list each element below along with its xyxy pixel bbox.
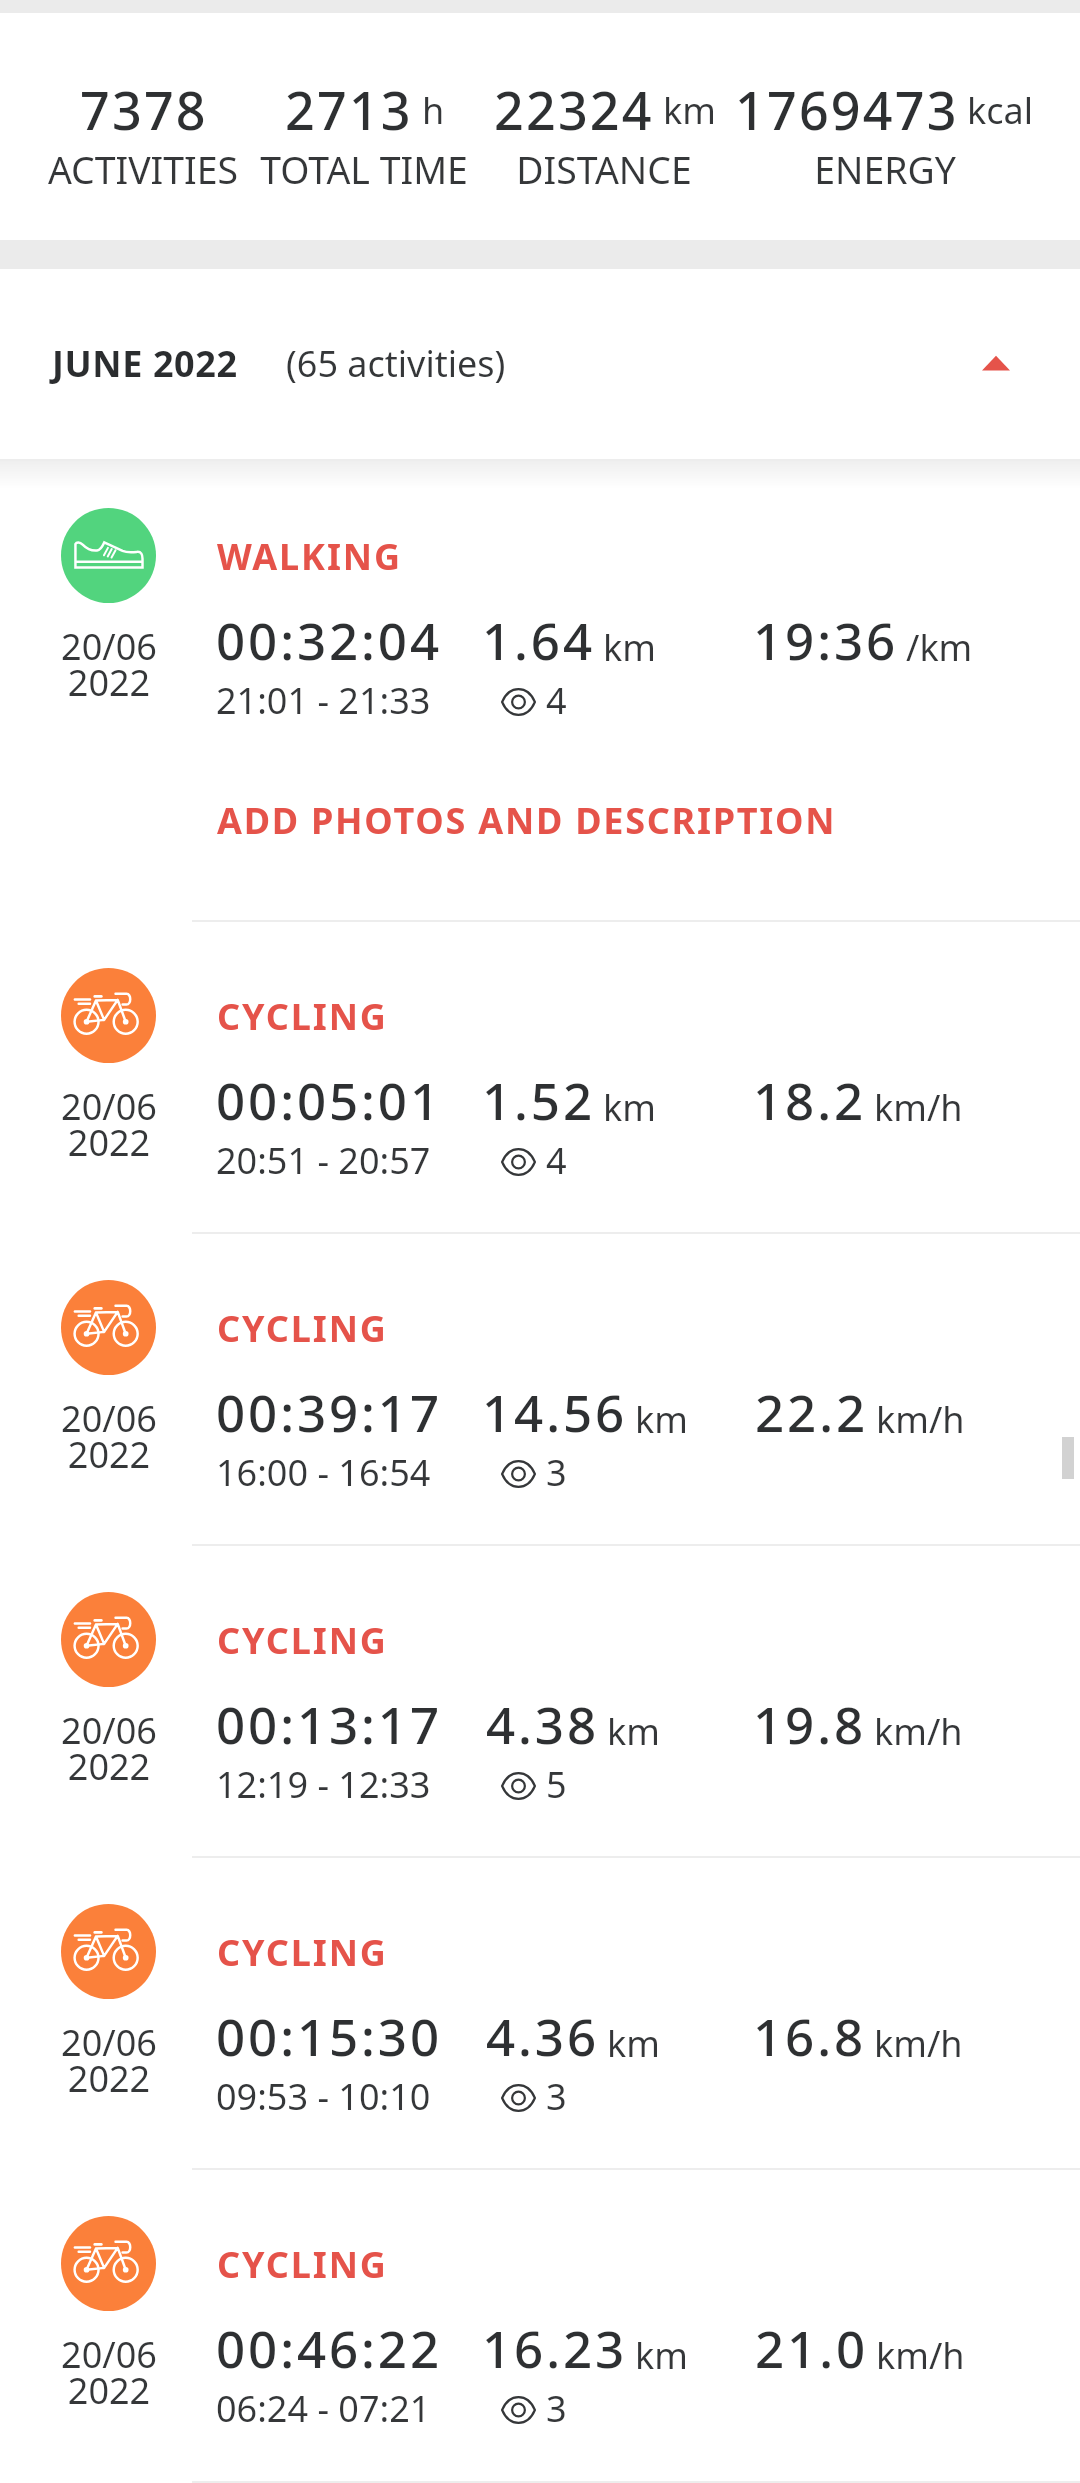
staticText: km [635, 1395, 688, 1444]
staticText: WALKING [217, 532, 402, 581]
staticText: km/h [874, 2019, 963, 2068]
staticText: 2022 [0, 2054, 309, 2103]
staticText: TOTAL TIME [164, 144, 564, 195]
staticText: 2022 [0, 1118, 309, 1167]
staticText: CYCLING [217, 1304, 388, 1353]
staticText: 4.36 [486, 2001, 599, 2070]
button[interactable]: 20/06 [0, 1856, 1080, 2168]
staticText: 06:24 - 07:21 [216, 2384, 431, 2433]
button[interactable]: ADD PHOTOS AND DESCRIPTION [192, 778, 1080, 920]
staticText: 3 [546, 2072, 567, 2121]
staticText: ENERGY [685, 144, 1080, 195]
staticText: 16:00 - 16:54 [216, 1448, 431, 1497]
staticText: km/h [876, 2331, 965, 2380]
staticText: km [635, 2331, 688, 2380]
staticText: CYCLING [217, 992, 388, 1041]
button[interactable]: 20/06 [0, 920, 1080, 1232]
staticText: 1.64 [482, 605, 595, 674]
staticText: km/h [874, 1707, 963, 1756]
staticText: ACTIVITIES [0, 144, 343, 195]
staticText: 20:51 - 20:57 [216, 1136, 431, 1185]
staticText: 20/06 [0, 1394, 309, 1443]
other: Collapse month [968, 348, 1024, 404]
staticText: 14.56 [482, 1377, 628, 1446]
staticText: kcal [967, 86, 1033, 135]
staticText: 2022 [0, 2366, 309, 2415]
staticText: 2022 [0, 1430, 309, 1479]
staticText: 00:05:01 [216, 1065, 442, 1134]
staticText: 21.0 [755, 2313, 868, 2382]
staticText: km/h [876, 1395, 965, 1444]
staticText: 4 [546, 1136, 567, 1185]
staticText: h [422, 86, 445, 135]
staticText: 09:53 - 10:10 [216, 2072, 431, 2121]
staticText: km/h [874, 1083, 963, 1132]
staticText: km [607, 2019, 660, 2068]
staticText: ADD PHOTOS AND DESCRIPTION [217, 796, 837, 845]
button[interactable] [0, 269, 1080, 459]
staticText: 19.8 [753, 1689, 866, 1758]
other: Views [501, 1461, 536, 1487]
staticText: CYCLING [217, 1616, 388, 1665]
staticText: 2022 [0, 658, 309, 707]
staticText: 3 [546, 1448, 567, 1497]
staticText: 16.8 [753, 2001, 866, 2070]
staticText: 1769473 [735, 74, 959, 145]
button[interactable]: 20/06 [0, 460, 1080, 778]
other: Views [501, 689, 536, 715]
other: Views [501, 2085, 536, 2111]
staticText: 5 [546, 1760, 567, 1809]
staticText: 7378 [80, 74, 208, 145]
staticText: 12:19 - 12:33 [216, 1760, 431, 1809]
staticText: km [663, 86, 716, 135]
staticText: 20/06 [0, 1082, 309, 1131]
staticText: (65 activities) [286, 339, 506, 388]
staticText: km [603, 623, 656, 672]
staticText: 4 [546, 676, 567, 725]
staticText: 20/06 [0, 622, 309, 671]
staticText: 4.38 [486, 1689, 599, 1758]
staticText: JUNE 2022 [52, 339, 238, 388]
staticText: 16.23 [482, 2313, 628, 2382]
staticText: CYCLING [217, 2240, 388, 2289]
staticText: km [607, 1707, 660, 1756]
staticText: 21:01 - 21:33 [216, 676, 431, 725]
staticText: 19:36 [753, 605, 899, 674]
button[interactable]: 20/06 [0, 1544, 1080, 1856]
button[interactable]: 20/06 [0, 1232, 1080, 1544]
staticText: 18.2 [753, 1065, 866, 1134]
staticText: km [603, 1083, 656, 1132]
staticText: 22.2 [755, 1377, 868, 1446]
staticText: 20/06 [0, 1706, 309, 1755]
staticText: 1.52 [482, 1065, 595, 1134]
staticText: /km [906, 623, 973, 672]
staticText: 2713 [285, 74, 413, 145]
other: Views [501, 1149, 536, 1175]
staticText: 20/06 [0, 2330, 309, 2379]
staticText: 3 [546, 2384, 567, 2433]
staticText: 20/06 [0, 2018, 309, 2067]
button[interactable]: 20/06 [0, 2168, 1080, 2480]
staticText: CYCLING [217, 1928, 388, 1977]
staticText: 2022 [0, 1742, 309, 1791]
staticText: 00:32:04 [216, 605, 442, 674]
staticText: 00:13:17 [216, 1689, 442, 1758]
staticText: 00:39:17 [216, 1377, 442, 1446]
staticText: 00:15:30 [216, 2001, 442, 2070]
staticText: 00:46:22 [216, 2313, 442, 2382]
other: Views [501, 2397, 536, 2423]
other: Views [501, 1773, 536, 1799]
staticText: DISTANCE [404, 144, 804, 195]
staticText: 22324 [494, 74, 654, 145]
